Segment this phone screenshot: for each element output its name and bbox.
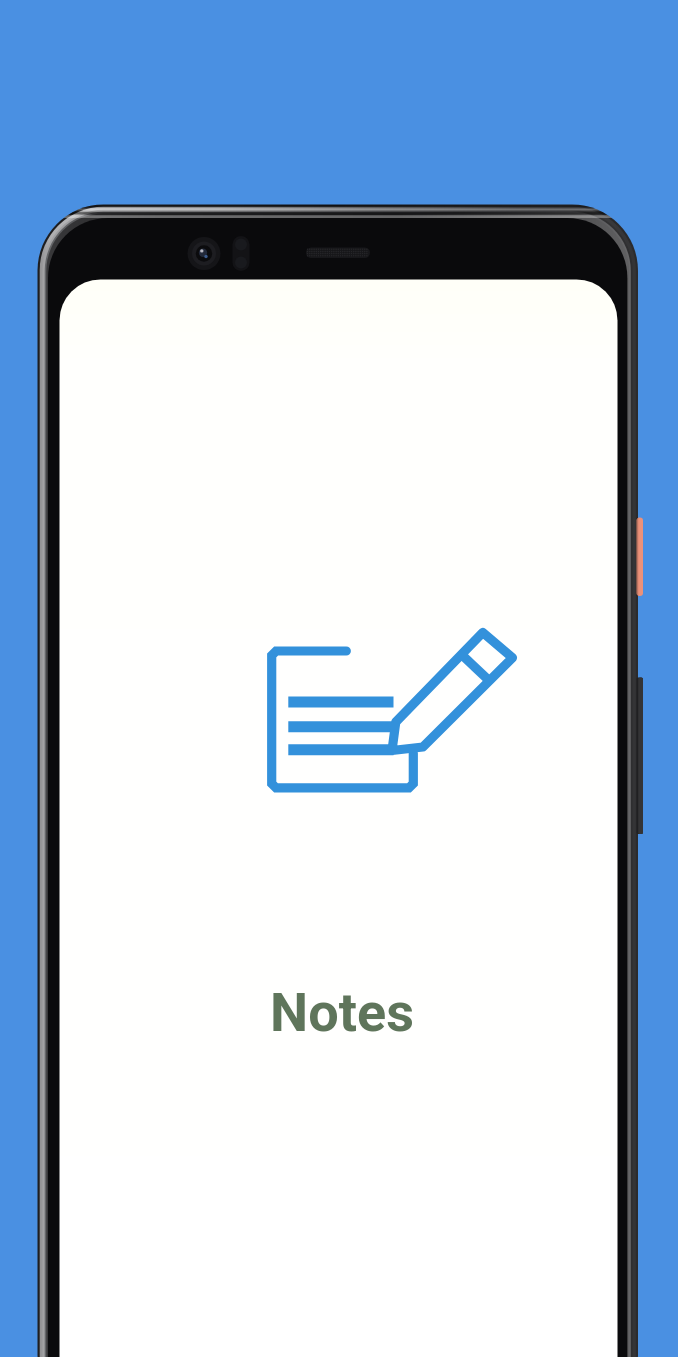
button[interactable]: Notes app icon: [269, 643, 529, 803]
staticText: Notes: [270, 981, 414, 1044]
button[interactable]: Notes: [270, 981, 414, 1044]
